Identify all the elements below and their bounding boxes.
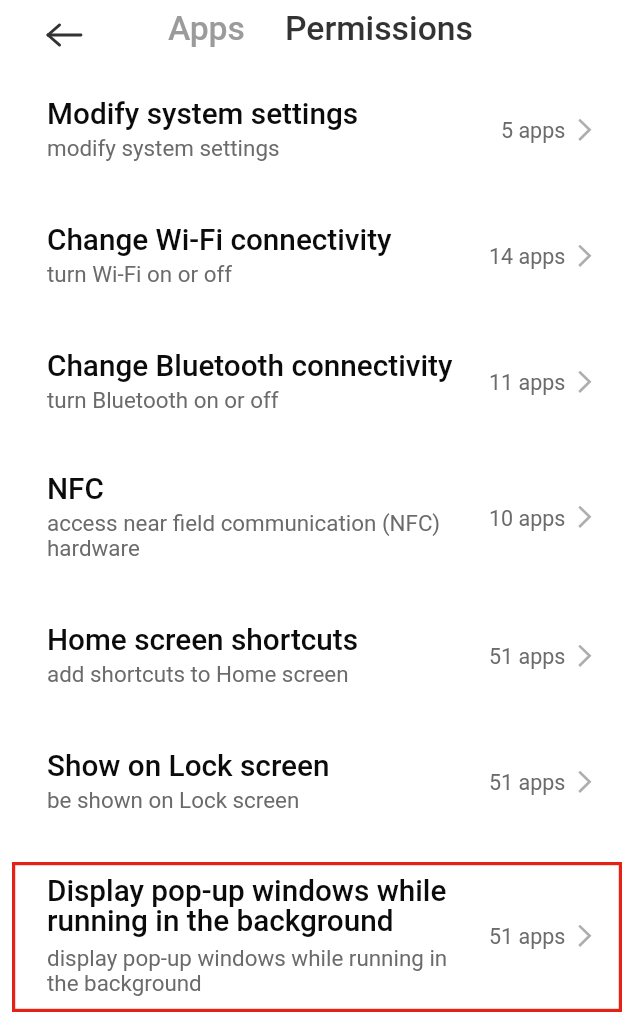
other: Open [578, 246, 591, 268]
staticText: add shortcuts to Home screen [47, 662, 349, 687]
staticText: 14 apps [489, 244, 566, 269]
button[interactable]: Modify system settings [47, 100, 591, 161]
staticText: turn Bluetooth on or off [47, 388, 279, 413]
staticText: 51 apps [489, 770, 566, 795]
button[interactable]: Home screen shortcuts [47, 626, 591, 687]
staticText: 11 apps [489, 370, 566, 395]
staticText: display pop-up windows while running in … [47, 946, 461, 996]
other: Open [578, 507, 591, 529]
staticText: Display pop-up windows while running in … [47, 877, 461, 937]
button[interactable]: Change Wi-Fi connectivity [47, 226, 591, 287]
staticText: Home screen shortcuts [47, 626, 359, 656]
other: Open [578, 926, 591, 948]
button[interactable]: Apps [168, 9, 245, 48]
staticText: Apps [168, 9, 245, 48]
staticText: 51 apps [489, 644, 566, 669]
staticText: 51 apps [489, 924, 566, 949]
other: Open [578, 772, 591, 794]
button[interactable]: Change Bluetooth connectivity [47, 352, 591, 413]
staticText: turn Wi-Fi on or off [47, 262, 232, 287]
staticText: access near field communication (NFC) ha… [47, 511, 461, 561]
other: Open [578, 372, 591, 394]
staticText: NFC [47, 475, 104, 505]
staticText: 5 apps [501, 118, 566, 143]
other: Open [578, 646, 591, 668]
staticText: be shown on Lock screen [47, 788, 300, 813]
other: Open [578, 120, 591, 142]
button[interactable]: Back [42, 13, 86, 57]
staticText: Modify system settings [47, 100, 359, 130]
staticText: Show on Lock screen [47, 752, 330, 782]
staticText: modify system settings [47, 136, 280, 161]
staticText: 10 apps [489, 506, 566, 531]
staticText: Change Bluetooth connectivity [47, 352, 453, 382]
button[interactable]: Permissions [285, 9, 473, 48]
staticText: Permissions [285, 9, 473, 48]
button[interactable]: NFC [47, 475, 591, 561]
button[interactable]: Show on Lock screen [47, 752, 591, 813]
button[interactable]: Display pop-up windows while running in … [47, 877, 591, 996]
staticText: Change Wi-Fi connectivity [47, 226, 392, 256]
